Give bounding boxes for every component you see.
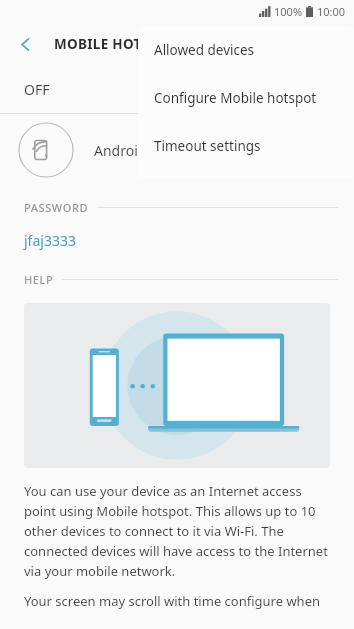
staticText: HELP xyxy=(24,272,54,287)
button[interactable]: Configure Mobile hotspot xyxy=(138,74,354,122)
button[interactable]: Allowed devices xyxy=(138,26,354,74)
staticText: Timeout settings xyxy=(154,137,261,155)
staticText: AndroidHotspot1234 xyxy=(94,141,232,160)
staticText: You can use your device as an Internet a… xyxy=(24,482,334,580)
staticText: 10:00 xyxy=(317,4,346,19)
staticText: 100% xyxy=(274,4,303,19)
staticText: Allowed devices xyxy=(154,41,255,59)
button[interactable]: AndroidHotspot1234 xyxy=(0,114,354,186)
button[interactable]: Back xyxy=(8,27,42,61)
button[interactable]: Timeout settings xyxy=(138,122,354,170)
staticText: MOBILE HOTSPOT xyxy=(54,35,177,53)
staticText: PASSWORD xyxy=(24,200,89,215)
staticText: OFF xyxy=(24,80,50,99)
staticText: Configure Mobile hotspot xyxy=(154,89,317,107)
staticText: Your screen may scroll with time configu… xyxy=(24,592,321,610)
button[interactable]: OFF xyxy=(0,66,354,113)
staticText: jfaj3333 xyxy=(24,231,76,250)
